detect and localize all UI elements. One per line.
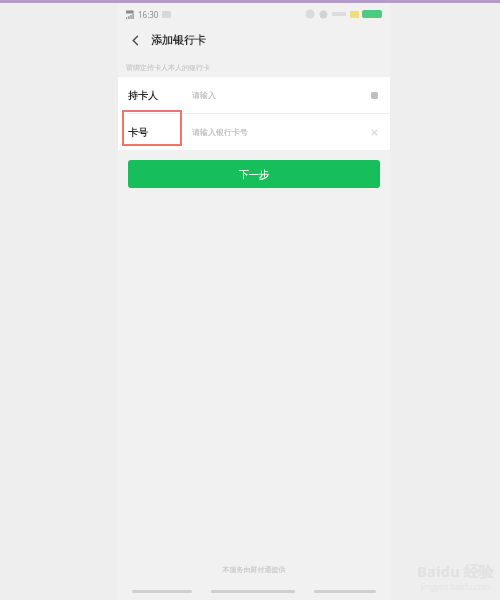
button[interactable]: Back bbox=[125, 30, 145, 50]
staticText: jingyan.baidu.com bbox=[421, 581, 491, 592]
button[interactable]: 持卡人 bbox=[118, 77, 390, 113]
staticText: 请输入 bbox=[192, 90, 216, 100]
staticText: 卡号 bbox=[128, 126, 182, 139]
staticText: Baidu 经验 bbox=[417, 561, 494, 581]
button[interactable]: Clear bbox=[369, 127, 380, 138]
button[interactable]: 下一步 bbox=[128, 160, 380, 188]
staticText: 下一步 bbox=[239, 168, 269, 181]
staticText: 请输入银行卡号 bbox=[192, 127, 248, 137]
staticText: 请绑定持卡人本人的银行卡 bbox=[126, 63, 210, 72]
staticText: 持卡人 bbox=[128, 89, 182, 102]
staticText: 添加银行卡 bbox=[151, 33, 206, 47]
staticText: 16:30 bbox=[138, 9, 159, 20]
button[interactable]: 卡号 bbox=[118, 114, 390, 150]
button[interactable]: Scan bbox=[369, 90, 380, 101]
staticText: 本服务由财付通提供 bbox=[118, 565, 390, 574]
